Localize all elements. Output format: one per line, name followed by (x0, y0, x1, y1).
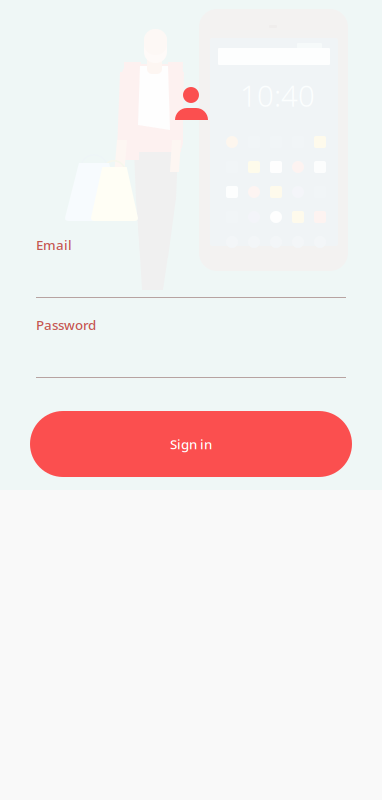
staticText: Password (36, 316, 96, 334)
button[interactable]: Sign in (30, 411, 352, 477)
staticText: Sign in (170, 435, 212, 453)
staticText: 10:40 (240, 76, 315, 115)
staticText: Email (36, 236, 72, 254)
